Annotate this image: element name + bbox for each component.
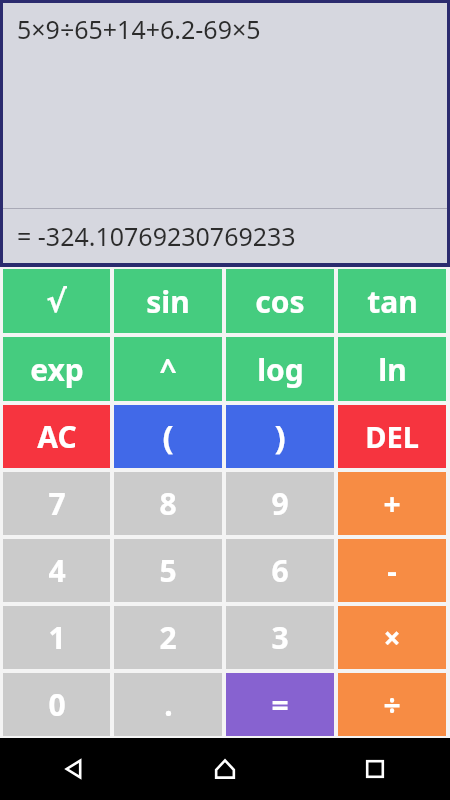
staticText: DEL: [365, 417, 419, 456]
staticText: log: [257, 349, 304, 390]
button[interactable]: 8: [114, 472, 222, 535]
button[interactable]: tan: [338, 269, 446, 333]
staticText: ^: [159, 349, 177, 390]
button[interactable]: 2: [114, 606, 222, 669]
button[interactable]: 6: [226, 539, 334, 602]
button[interactable]: (: [114, 405, 222, 468]
staticText: =: [271, 684, 289, 725]
staticText: ÷: [383, 684, 401, 725]
staticText: exp: [30, 349, 84, 390]
button[interactable]: Recents: [300, 738, 450, 800]
staticText: sin: [146, 281, 190, 322]
button[interactable]: ): [226, 405, 334, 468]
staticText: ln: [378, 349, 407, 390]
staticText: 5: [159, 550, 177, 591]
button[interactable]: exp: [3, 337, 110, 401]
staticText: 9: [271, 483, 289, 524]
button[interactable]: log: [226, 337, 334, 401]
staticText: 6: [271, 550, 289, 591]
button[interactable]: ×: [338, 606, 446, 669]
staticText: cos: [255, 281, 305, 322]
button[interactable]: 7: [3, 472, 110, 535]
staticText: 7: [48, 483, 66, 524]
button[interactable]: AC: [3, 405, 110, 468]
button[interactable]: ^: [114, 337, 222, 401]
staticText: √: [46, 283, 67, 319]
staticText: tan: [367, 281, 418, 322]
staticText: 1: [48, 617, 66, 658]
button[interactable]: 0: [3, 673, 110, 736]
staticText: 3: [271, 617, 289, 658]
staticText: ×: [383, 617, 401, 658]
button[interactable]: 3: [226, 606, 334, 669]
staticText: 8: [159, 483, 177, 524]
button[interactable]: ln: [338, 337, 446, 401]
button[interactable]: +: [338, 472, 446, 535]
staticText: (: [162, 414, 174, 459]
button[interactable]: 9: [226, 472, 334, 535]
button[interactable]: Home: [150, 738, 300, 800]
button[interactable]: √: [3, 269, 110, 333]
staticText: -: [387, 550, 397, 591]
button[interactable]: DEL: [338, 405, 446, 468]
button[interactable]: Back: [0, 738, 150, 800]
button[interactable]: 5: [114, 539, 222, 602]
staticText: 5×9÷65+14+6.2-69×5: [17, 12, 261, 46]
staticText: +: [383, 483, 401, 524]
button[interactable]: =: [226, 673, 334, 736]
button[interactable]: ÷: [338, 673, 446, 736]
staticText: .: [164, 684, 173, 725]
staticText: AC: [37, 416, 77, 457]
button[interactable]: sin: [114, 269, 222, 333]
button[interactable]: -: [338, 539, 446, 602]
staticText: ): [274, 414, 286, 459]
staticText: 4: [48, 550, 66, 591]
staticText: 2: [159, 617, 177, 658]
button[interactable]: 4: [3, 539, 110, 602]
staticText: = -324.10769230769233: [17, 219, 296, 253]
staticText: 0: [48, 684, 66, 725]
button[interactable]: cos: [226, 269, 334, 333]
button[interactable]: 1: [3, 606, 110, 669]
